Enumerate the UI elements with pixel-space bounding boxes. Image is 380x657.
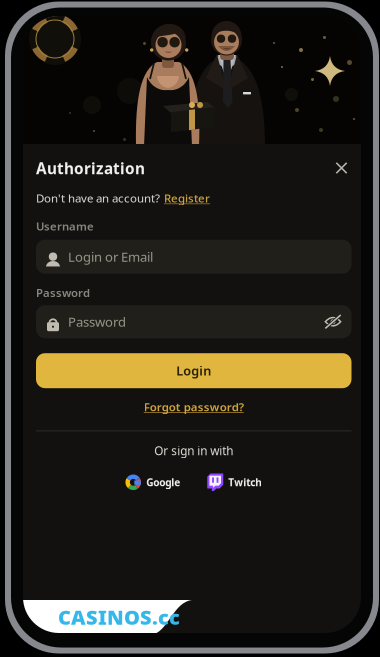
button[interactable]: Forgot password? [36,399,351,414]
button[interactable]: Register [164,190,210,206]
staticText: Or sign in with [154,443,233,458]
staticText: Password [36,285,90,300]
staticText: Password [68,313,126,330]
staticText: Forgot password? [144,399,244,414]
staticText: Username [36,219,94,234]
button[interactable]: Close [331,158,351,178]
button[interactable]: Login [36,353,351,388]
staticText: Authorization [36,158,145,178]
button[interactable]: Twitch [207,473,262,491]
staticText: CASINOS.cc [58,604,180,630]
staticText: Don't have an account? [36,190,160,206]
staticText: Twitch [228,476,262,489]
button[interactable]: Google [125,474,180,490]
button[interactable]: Show password [324,314,341,329]
staticText: Login or Email [68,248,153,265]
staticText: Google [146,476,180,489]
staticText: Login [176,362,211,379]
staticText: Register [164,190,210,206]
